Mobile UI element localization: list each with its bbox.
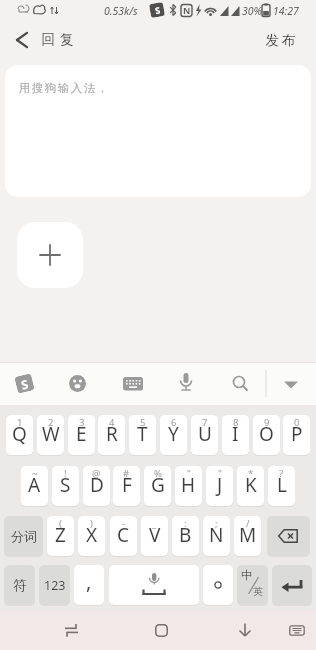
button[interactable]: 符 xyxy=(4,565,35,605)
button[interactable]: 中 xyxy=(237,565,268,605)
button[interactable]: 8 xyxy=(222,415,249,455)
staticText: S xyxy=(19,375,30,393)
staticText: _ xyxy=(152,517,157,530)
button[interactable] xyxy=(284,618,310,642)
button[interactable] xyxy=(283,380,299,390)
staticText: N xyxy=(209,522,224,548)
staticText: 30% xyxy=(242,4,262,18)
button[interactable]: 发布 xyxy=(264,32,297,49)
staticText: % xyxy=(154,467,162,480)
button[interactable] xyxy=(109,565,199,605)
button[interactable]: * xyxy=(237,466,264,506)
button[interactable] xyxy=(230,615,260,645)
staticText: B xyxy=(179,522,192,548)
staticText: Y xyxy=(168,421,179,447)
staticText: : xyxy=(184,517,187,530)
button[interactable] xyxy=(69,375,86,392)
button[interactable] xyxy=(179,373,193,394)
button[interactable]: : xyxy=(172,516,199,556)
staticText: @ xyxy=(92,467,101,480)
button[interactable]: 1 xyxy=(6,415,33,455)
staticText: 0 xyxy=(294,416,300,429)
button[interactable]: 123 xyxy=(39,565,70,605)
staticText: 7 xyxy=(202,416,208,429)
staticText: 分词 xyxy=(11,528,37,544)
button[interactable]: 分词 xyxy=(4,516,43,556)
staticText: E xyxy=(76,421,87,447)
staticText: 5 xyxy=(140,416,146,429)
staticText: K xyxy=(245,472,257,498)
staticText: L xyxy=(277,472,287,498)
button[interactable]: 7 xyxy=(191,415,218,455)
button[interactable]: ? xyxy=(268,466,295,506)
button[interactable] xyxy=(8,26,36,54)
button[interactable]: 4 xyxy=(98,415,125,455)
staticText: ! xyxy=(64,467,67,480)
staticText: W xyxy=(42,421,60,447)
button[interactable]: 5 xyxy=(129,415,156,455)
staticText: 3 xyxy=(79,416,85,429)
staticText: Q xyxy=(12,421,27,447)
staticText: , xyxy=(86,568,92,595)
staticText: ? xyxy=(279,467,284,480)
staticText: S xyxy=(154,4,161,16)
button[interactable]: / xyxy=(234,516,261,556)
staticText: 9 xyxy=(264,416,270,429)
button[interactable]: - xyxy=(110,516,137,556)
button[interactable] xyxy=(123,377,143,391)
button[interactable]: 9 xyxy=(253,415,280,455)
button[interactable]: ( xyxy=(47,516,74,556)
button[interactable]: _ xyxy=(141,516,168,556)
staticText: 符 xyxy=(13,577,27,594)
button[interactable]: # xyxy=(113,466,140,506)
staticText: G xyxy=(151,472,165,498)
button[interactable]: 2 xyxy=(37,415,64,455)
button[interactable] xyxy=(232,375,249,392)
button[interactable]: " xyxy=(206,466,233,506)
staticText: 2 xyxy=(48,416,54,429)
staticText: X xyxy=(86,522,98,548)
staticText: Z xyxy=(55,522,66,548)
button[interactable]: ) xyxy=(78,516,105,556)
staticText: 0.53k/s xyxy=(104,4,138,18)
staticText: S xyxy=(60,472,71,498)
staticText: / xyxy=(246,517,250,530)
staticText: - xyxy=(122,517,126,530)
staticText: " xyxy=(218,467,222,480)
button[interactable]: ! xyxy=(52,466,79,506)
button[interactable] xyxy=(146,615,176,645)
staticText: C xyxy=(117,522,130,548)
button[interactable]: % xyxy=(144,466,171,506)
staticText: ( xyxy=(59,517,62,530)
staticText: P xyxy=(291,421,303,447)
button[interactable]: " xyxy=(175,466,202,506)
staticText: 英 xyxy=(253,585,263,598)
button[interactable] xyxy=(56,615,86,645)
staticText: I xyxy=(232,421,239,447)
button[interactable]: , xyxy=(74,565,104,605)
staticText: T xyxy=(137,421,148,447)
staticText: A xyxy=(28,472,41,498)
button[interactable]: 用搜狗输入法， xyxy=(5,65,311,197)
button[interactable]: 6 xyxy=(160,415,187,455)
button[interactable]: ~ xyxy=(21,466,48,506)
staticText: # xyxy=(123,467,130,480)
staticText: 1 xyxy=(17,416,23,429)
staticText: F xyxy=(122,472,132,498)
staticText: 4 xyxy=(109,416,115,429)
staticText: 用搜狗输入法， xyxy=(18,81,109,95)
staticText: H xyxy=(181,472,196,498)
button[interactable] xyxy=(267,516,310,556)
button[interactable] xyxy=(203,565,233,605)
staticText: 123 xyxy=(44,577,66,594)
button[interactable]: @ xyxy=(83,466,110,506)
button[interactable]: S xyxy=(16,375,33,392)
staticText: J xyxy=(217,472,223,498)
button[interactable] xyxy=(272,565,312,605)
button[interactable] xyxy=(17,222,83,288)
staticText: ; xyxy=(215,517,218,530)
button[interactable]: 3 xyxy=(68,415,95,455)
staticText: 发布 xyxy=(264,32,297,49)
button[interactable]: 0 xyxy=(283,415,310,455)
button[interactable]: ; xyxy=(203,516,230,556)
